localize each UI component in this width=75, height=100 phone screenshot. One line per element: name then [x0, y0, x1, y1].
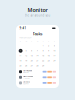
button[interactable]: 5: [23, 48, 29, 53]
button[interactable]: 1: [40, 43, 46, 48]
staticText: 12: [25, 55, 27, 57]
button[interactable]: 12: [23, 53, 29, 58]
staticText: 17: [53, 55, 55, 57]
staticText: 6: [31, 50, 32, 52]
button[interactable]: 10: [52, 48, 57, 53]
staticText: 8: [43, 50, 44, 52]
staticText: 11:00 AM: [23, 77, 29, 79]
staticText: 4: [20, 50, 21, 52]
staticText: 14: [36, 55, 38, 57]
staticText: the air around you: [24, 14, 50, 17]
button[interactable]: 3: [52, 43, 57, 48]
button[interactable]: 20: [29, 58, 35, 63]
staticText: 28: [36, 65, 38, 67]
staticText: Air check: [23, 81, 30, 83]
button[interactable]: 27: [29, 63, 35, 68]
button[interactable]: 24: [52, 58, 57, 63]
staticText: 18: [20, 60, 22, 62]
button[interactable]: 17: [52, 53, 57, 58]
button[interactable]: Morning walk: [18, 69, 57, 74]
staticText: 25: [20, 65, 22, 67]
staticText: 15: [42, 55, 44, 57]
button[interactable]: 7: [35, 48, 40, 53]
staticText: 5:30 PM: [23, 83, 28, 85]
staticText: 26: [25, 65, 27, 67]
staticText: 16: [48, 55, 50, 57]
button[interactable]: 8: [40, 48, 46, 53]
button[interactable]: 26: [23, 63, 29, 68]
staticText: Morning walk: [23, 70, 32, 72]
staticText: 11: [20, 55, 22, 57]
staticText: 19: [25, 60, 27, 62]
button[interactable]: 23: [46, 58, 51, 63]
button[interactable]: 16: [46, 53, 51, 58]
staticText: 2: [48, 45, 49, 47]
button[interactable]: 14: [35, 53, 40, 58]
staticText: 20: [31, 60, 33, 62]
staticText: 9:41: [19, 26, 26, 30]
button[interactable]: 9: [46, 48, 51, 53]
staticText: 1: [43, 45, 44, 47]
button[interactable]: Filter change: [18, 74, 57, 80]
button[interactable]: 13: [29, 53, 35, 58]
staticText: 27: [31, 65, 33, 67]
button[interactable]: 18: [18, 58, 23, 63]
button[interactable]: 19: [23, 58, 29, 63]
staticText: 7: [37, 50, 38, 52]
staticText: Filter change: [23, 75, 33, 77]
staticText: Monitor: [27, 6, 47, 14]
button[interactable]: 4: [18, 48, 23, 53]
button[interactable]: 25: [18, 63, 23, 68]
button[interactable]: 21: [35, 58, 40, 63]
staticText: 5: [26, 50, 27, 52]
staticText: 24: [53, 60, 55, 62]
button[interactable]: 29: [40, 63, 46, 68]
staticText: 3: [54, 45, 55, 47]
staticText: February 2024: [19, 37, 31, 39]
button[interactable]: 11: [18, 53, 23, 58]
staticText: 8:00 AM: [23, 72, 28, 73]
staticText: 10: [53, 50, 55, 52]
staticText: 13: [31, 55, 33, 57]
button[interactable]: Air check: [18, 80, 57, 86]
staticText: Tasks: [32, 31, 42, 36]
staticText: 9: [48, 50, 49, 52]
button[interactable]: 28: [35, 63, 40, 68]
staticText: 22: [42, 60, 44, 62]
staticText: 23: [48, 60, 50, 62]
staticText: 21: [36, 60, 38, 62]
button[interactable]: 15: [40, 53, 46, 58]
button[interactable]: 2: [46, 43, 51, 48]
button[interactable]: 22: [40, 58, 46, 63]
staticText: 29: [42, 65, 44, 67]
button[interactable]: 6: [29, 48, 35, 53]
